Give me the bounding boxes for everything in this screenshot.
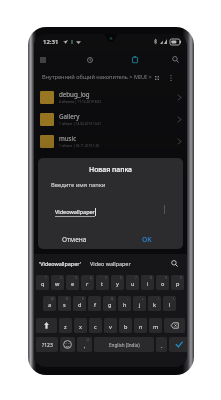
button[interactable]: debug_log [34,86,187,108]
staticText: g [108,301,112,309]
staticText: p [176,280,180,288]
button[interactable]: @ [43,296,56,311]
staticText: 12:31 [43,38,59,46]
button[interactable]: ) [163,296,176,311]
button[interactable]: & [103,296,116,311]
staticText: ☺ [86,338,90,342]
staticText: x [79,323,82,331]
staticText: s [63,301,66,309]
button[interactable]: Отмена [38,229,110,249]
staticText: h [123,301,127,309]
staticText: 1 объект | 14.04.2019 14:41 [59,122,102,126]
button[interactable]: Backspace [164,318,185,333]
button[interactable]: - [118,296,131,311]
staticText: m [153,323,159,331]
staticText: OK [142,235,152,244]
button[interactable]: 3 [66,275,79,290]
button[interactable]: x [74,318,87,333]
staticText: $ [82,297,84,301]
button[interactable]: Search [170,259,179,268]
button[interactable]: OK [110,229,183,249]
button[interactable]: Shift [36,318,57,333]
button[interactable]: View mode [152,73,161,82]
staticText: r [86,280,89,288]
button[interactable]: Done [169,337,187,352]
staticText: t [101,280,104,288]
staticText: Введите имя папки [51,181,106,189]
button[interactable]: c [89,318,102,333]
button[interactable]: 7 [126,275,139,290]
button[interactable]: Recent files [81,51,99,68]
button[interactable]: m [149,318,162,333]
button[interactable]: Gallery [34,108,187,130]
button[interactable]: 2 [51,275,64,290]
staticText: b [124,323,128,331]
button[interactable]: + [133,296,146,311]
staticText: k [153,301,156,309]
staticText: 8 [150,276,152,280]
staticText: Video wallpaper [90,260,131,267]
staticText: 4 [90,276,92,280]
button[interactable]: 4 [81,275,94,290]
staticText: 'Videowallpaper' [39,260,81,267]
staticText: music [59,134,77,142]
button[interactable]: Video wallpaper [90,260,131,267]
staticText: v [109,323,112,331]
staticText: a [48,301,52,309]
staticText: ?123 [42,342,53,349]
staticText: y [116,280,119,288]
button[interactable]: n [134,318,147,333]
button[interactable]: Emoji [60,337,75,352]
button[interactable]: b [119,318,132,333]
staticText: 7 [135,276,137,280]
button[interactable]: v [104,318,117,333]
staticText: + [142,297,144,301]
button[interactable]: ( [148,296,161,311]
button[interactable]: 8 [141,275,154,290]
button[interactable]: . [156,337,167,352]
button[interactable]: More options [166,73,175,82]
button[interactable]: z [59,318,72,333]
staticText: 6 [120,276,122,280]
staticText: j [139,301,141,309]
button[interactable]: 6 [111,275,124,290]
button[interactable]: ?123 [36,337,58,352]
button[interactable]: 1 [36,275,49,290]
button[interactable]: ☺ [77,337,92,352]
button[interactable]: _ [88,296,101,311]
staticText: q [41,280,45,288]
staticText: Отмена [62,235,87,244]
staticText: ( [158,297,159,301]
staticText: l [169,301,171,309]
staticText: . [161,342,163,350]
staticText: w [55,280,60,288]
staticText: English (India) [109,342,140,348]
staticText: d [78,301,82,309]
button[interactable]: # [58,296,71,311]
staticText: n [139,323,143,331]
button[interactable]: Menu [34,51,52,68]
button[interactable]: Paste [126,51,144,68]
staticText: c [94,323,97,331]
staticText: & [111,297,114,301]
staticText: 1 объект | 03.11.2019 1:20 [59,144,100,148]
staticText: ) [173,297,174,301]
button[interactable]: 0 [171,275,184,290]
button[interactable]: 9 [156,275,169,290]
staticText: f [94,301,96,309]
button[interactable]: English (India) [94,337,154,352]
button[interactable]: Search [166,51,184,68]
staticText: Внутренний общий накопитель > MIUI > [42,73,152,81]
staticText: # [66,297,69,301]
staticText: Videowallpaper [55,208,95,215]
staticText: 2 [60,276,62,280]
button[interactable]: 'Videowallpaper' [39,260,81,267]
staticText: - [127,297,129,301]
button[interactable]: 5 [96,275,109,290]
staticText: 0 [180,276,182,280]
staticText: 9 [165,276,167,280]
staticText: z [64,323,67,331]
button[interactable]: music [34,130,187,152]
button[interactable]: $ [73,296,86,311]
staticText: @ [51,297,54,301]
